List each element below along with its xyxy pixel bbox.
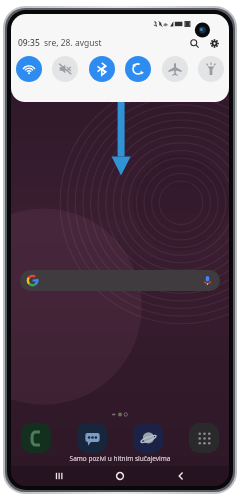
- button[interactable]: Bluetooth: [89, 56, 115, 82]
- button[interactable]: Settings: [207, 36, 222, 51]
- button[interactable]: Internet: [133, 423, 163, 453]
- button[interactable]: Wi-Fi: [16, 56, 42, 82]
- staticText: sre, 28. avgust: [44, 37, 102, 49]
- button[interactable]: Recents: [46, 466, 72, 486]
- button[interactable]: Auto rotate: [125, 56, 151, 82]
- button[interactable]: Home: [107, 466, 133, 486]
- button[interactable]: Back: [168, 466, 194, 486]
- button[interactable]: Phone: [21, 423, 51, 453]
- button[interactable]: Messages: [77, 423, 107, 453]
- staticText: Samo pozivi u hitnim slučajevima: [11, 454, 229, 463]
- button[interactable]: 09:35: [18, 37, 40, 49]
- button[interactable]: Airplane mode: [162, 56, 188, 82]
- button[interactable]: Mute: [52, 56, 78, 82]
- button[interactable]: Apps: [189, 423, 219, 453]
- button[interactable]: Search: [187, 36, 202, 51]
- button[interactable]: Flashlight: [198, 56, 224, 82]
- button[interactable]: [20, 270, 220, 291]
